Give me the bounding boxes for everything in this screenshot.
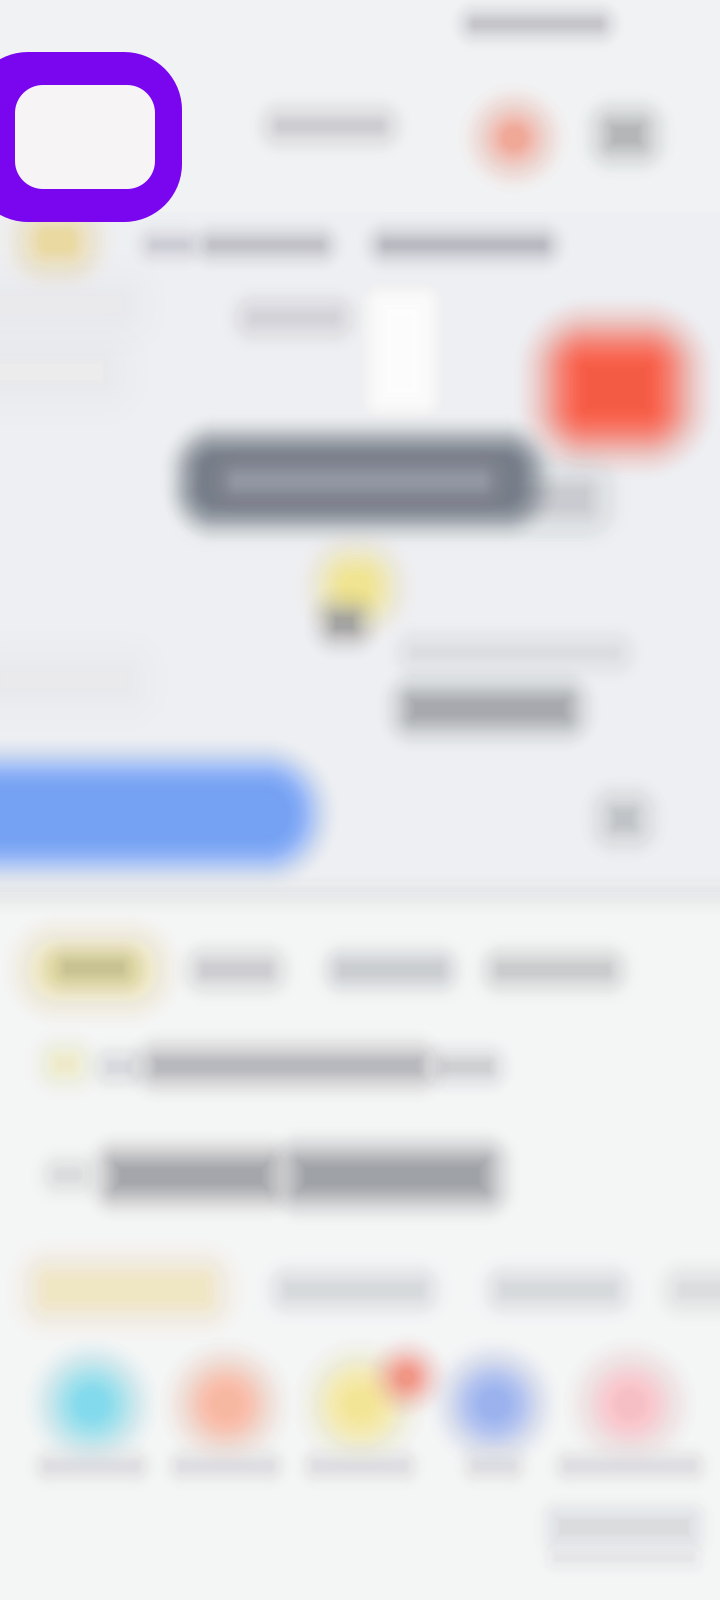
button[interactable]: App icon: [0, 52, 182, 222]
